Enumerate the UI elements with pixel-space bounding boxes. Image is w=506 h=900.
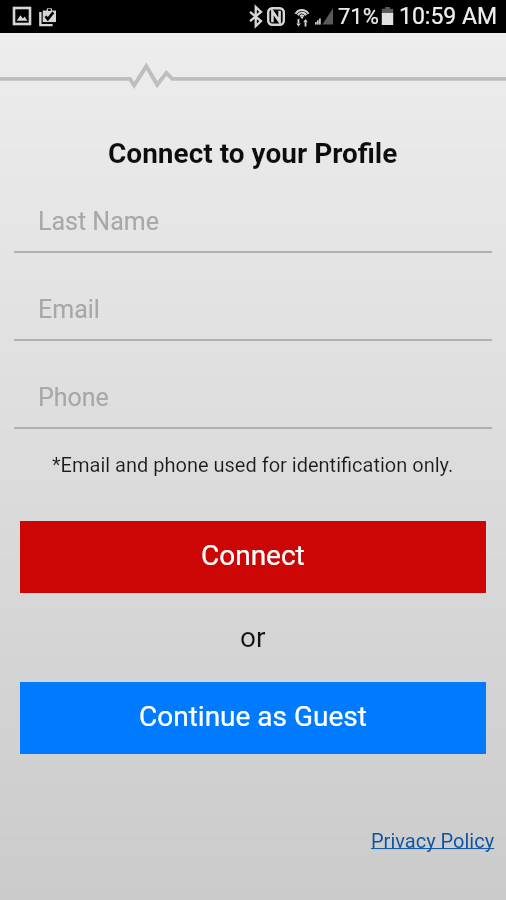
other: Task complete bbox=[39, 8, 56, 26]
button[interactable]: Email bbox=[0, 287, 506, 341]
staticText: Continue as Guest bbox=[139, 700, 367, 733]
staticText: Connect to your Profile bbox=[108, 137, 398, 170]
staticText: Email bbox=[38, 295, 100, 324]
button[interactable]: Continue as Guest bbox=[20, 682, 486, 754]
staticText: Connect bbox=[201, 539, 305, 572]
staticText: or bbox=[240, 621, 266, 654]
button[interactable]: Privacy Policy bbox=[371, 829, 495, 852]
other: Screenshot captured bbox=[14, 8, 30, 24]
button[interactable]: Connect bbox=[20, 521, 486, 593]
staticText: 10:59 AM bbox=[399, 3, 498, 30]
staticText: Last Name bbox=[38, 207, 159, 236]
staticText: 71% bbox=[338, 4, 379, 30]
staticText: Privacy Policy bbox=[371, 829, 495, 852]
staticText: *Email and phone used for identification… bbox=[52, 453, 454, 476]
button[interactable]: Phone bbox=[0, 375, 506, 429]
button[interactable]: Last Name bbox=[0, 199, 506, 253]
staticText: Phone bbox=[38, 383, 109, 412]
